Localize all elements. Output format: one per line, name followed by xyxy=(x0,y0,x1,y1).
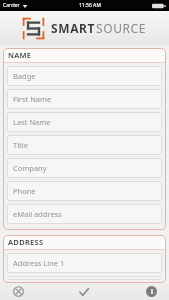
button[interactable]: Company xyxy=(7,158,162,178)
button[interactable]: Cancel xyxy=(0,283,36,300)
staticText: 11:56 AM xyxy=(79,2,101,9)
staticText: Address Line 1 xyxy=(13,258,65,268)
button[interactable]: Last Name xyxy=(7,112,162,132)
staticText: NAME xyxy=(8,50,32,60)
staticText: Address Line 2 xyxy=(13,276,65,280)
staticText: i xyxy=(151,287,153,296)
staticText: SMART xyxy=(51,20,96,36)
staticText: First Name xyxy=(13,94,52,104)
button[interactable]: First Name xyxy=(7,89,162,109)
staticText: SOURCE xyxy=(96,20,147,36)
staticText: Carrier xyxy=(3,2,20,9)
button[interactable]: eMail address xyxy=(7,204,162,224)
button[interactable]: Info xyxy=(133,283,169,300)
button[interactable]: Address Line 2 xyxy=(7,276,162,280)
staticText: ADDRESS xyxy=(8,237,44,247)
staticText: Phone xyxy=(13,186,36,196)
staticText: eMail address xyxy=(13,209,62,219)
staticText: Last Name xyxy=(13,117,51,127)
button[interactable]: Title xyxy=(7,135,162,155)
button[interactable]: Save xyxy=(66,283,102,300)
button[interactable]: Phone xyxy=(7,181,162,201)
button[interactable]: Badge xyxy=(7,66,162,86)
staticText: Company xyxy=(13,163,47,173)
staticText: Badge xyxy=(13,71,36,81)
button[interactable]: Address Line 1 xyxy=(7,253,162,273)
staticText: Title xyxy=(13,140,28,150)
